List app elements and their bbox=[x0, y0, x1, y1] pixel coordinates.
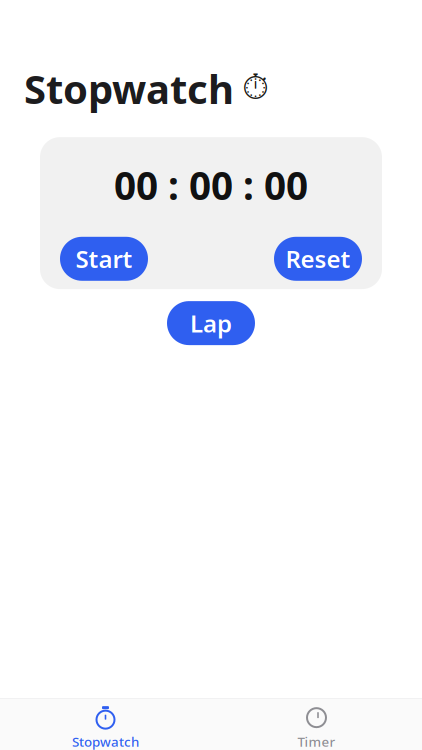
staticText: Start bbox=[75, 243, 132, 275]
staticText: Stopwatch bbox=[24, 62, 234, 115]
button[interactable]: Timer bbox=[211, 699, 422, 750]
button[interactable]: Stopwatch bbox=[0, 699, 211, 750]
staticText: Reset bbox=[285, 243, 350, 275]
button[interactable]: Lap bbox=[167, 301, 255, 345]
staticText: Timer bbox=[297, 733, 335, 750]
staticText: ⏱ bbox=[242, 72, 269, 105]
staticText: 00 : 00 : 00 bbox=[114, 159, 308, 211]
button[interactable]: Start bbox=[60, 237, 148, 281]
staticText: Lap bbox=[190, 307, 232, 339]
button[interactable]: Reset bbox=[274, 237, 362, 281]
staticText: Stopwatch bbox=[72, 733, 139, 750]
